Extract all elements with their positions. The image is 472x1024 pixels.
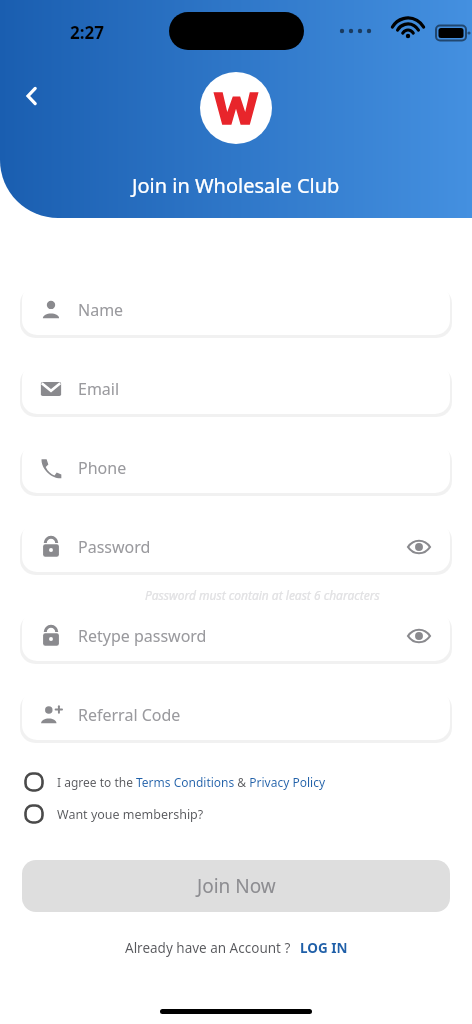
staticText: Retype password [78,625,207,647]
button[interactable]: Name [22,285,450,335]
staticText: Name [78,299,124,321]
button[interactable]: Email [22,364,450,414]
button[interactable]: Join Now [22,860,450,912]
button[interactable]: Back [16,80,48,112]
staticText: Email [78,378,120,400]
staticText: I agree to the Terms Conditions & Privac… [57,774,326,790]
button[interactable]: Password [22,522,450,572]
staticText: Phone [78,457,127,479]
staticText: Join in Wholesale Club [132,172,340,199]
button[interactable]: Retype password [22,611,450,661]
staticText: LOG IN [300,939,348,957]
staticText: Referral Code [78,704,181,726]
button[interactable]: Show password [406,623,432,649]
staticText: Join Now [197,873,276,899]
staticText: Password [78,536,151,558]
staticText: Already have an Account ? [125,939,291,957]
button[interactable]: Phone [22,443,450,493]
button[interactable]: I agree to the Terms Conditions & Privac… [24,772,448,792]
button[interactable]: LOG IN [300,939,348,957]
button[interactable]: Show password [406,534,432,560]
button[interactable]: Referral Code [22,690,450,740]
staticText: 2:27 [70,21,104,44]
staticText: Password must contain at least 6 charact… [145,587,380,603]
staticText: Want youe membership? [57,806,204,823]
button[interactable]: Want youe membership? [24,804,448,824]
